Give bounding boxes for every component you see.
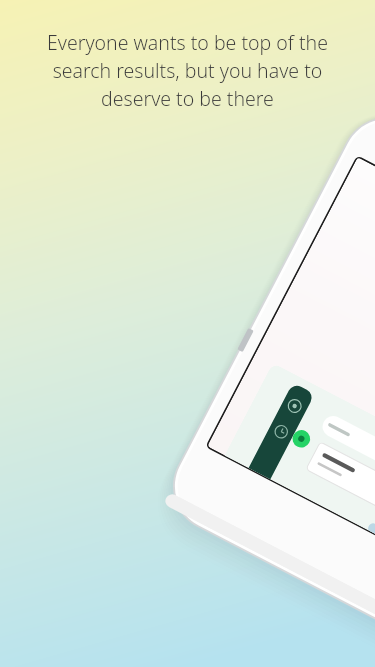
staticText: Everyone wants to be top of the search r… xyxy=(24,29,351,112)
button[interactable]: Phone mockup showing a chat application xyxy=(0,0,375,667)
